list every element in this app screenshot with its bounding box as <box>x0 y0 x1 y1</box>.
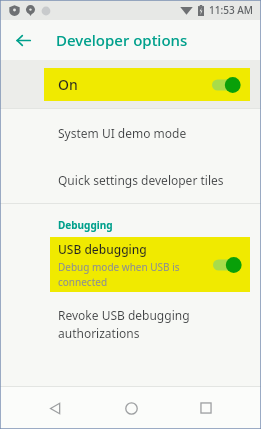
staticText: 11:53 AM <box>209 3 253 17</box>
button[interactable]: Back <box>34 387 76 429</box>
staticText: Developer options <box>56 30 188 50</box>
button[interactable]: On <box>44 68 250 101</box>
button[interactable]: Back <box>10 27 36 53</box>
staticText: Quick settings developer tiles <box>58 172 224 188</box>
staticText: On <box>58 75 78 94</box>
button[interactable]: Revoke USB debugging <box>0 296 261 352</box>
staticText: Revoke USB debugging <box>58 307 190 323</box>
button[interactable]: Toggle on <box>213 256 241 274</box>
staticText: USB debugging <box>58 241 147 257</box>
staticText: Debugging <box>58 218 113 232</box>
staticText: connected <box>58 275 108 289</box>
button[interactable]: Home <box>110 387 152 429</box>
staticText: Debug mode when USB is <box>58 260 180 274</box>
button[interactable]: Recent apps <box>185 387 227 429</box>
button[interactable]: System UI demo mode <box>0 109 261 156</box>
button[interactable]: USB debugging <box>50 237 250 292</box>
staticText: System UI demo mode <box>58 125 187 141</box>
staticText: authorizations <box>58 325 140 341</box>
button[interactable]: Toggle on <box>212 76 240 94</box>
button[interactable]: Quick settings developer tiles <box>0 156 261 203</box>
